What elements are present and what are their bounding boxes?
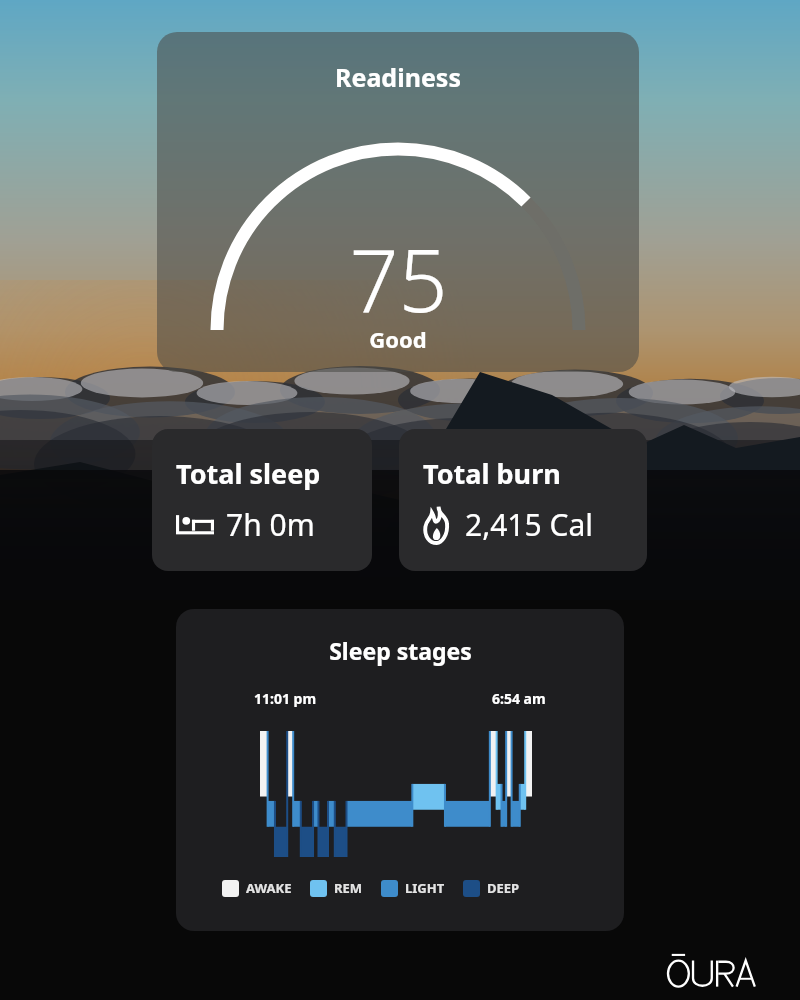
- staticText: Sleep stages: [329, 635, 472, 666]
- staticText: REM: [334, 879, 363, 897]
- staticText: Total burn: [423, 455, 561, 492]
- staticText: 75: [349, 220, 448, 337]
- staticText: LIGHT: [405, 879, 445, 897]
- staticText: AWAKE: [246, 879, 292, 897]
- button[interactable]: Readiness: [157, 32, 639, 372]
- button[interactable]: Sleep stages: [176, 609, 624, 931]
- staticText: DEEP: [487, 879, 520, 897]
- other: Oura: [668, 948, 780, 990]
- staticText: 11:01 pm: [254, 689, 317, 708]
- button[interactable]: Total burn: [399, 429, 647, 571]
- button[interactable]: Total sleep: [152, 429, 372, 571]
- staticText: 2,415 Cal: [465, 504, 594, 545]
- staticText: 7h 0m: [226, 504, 315, 545]
- staticText: Good: [369, 324, 427, 354]
- staticText: 6:54 am: [492, 689, 546, 708]
- staticText: Readiness: [335, 60, 461, 94]
- staticText: Total sleep: [176, 455, 321, 492]
- other: Calories burned: [423, 507, 453, 543]
- other: Sleep: [176, 512, 214, 538]
